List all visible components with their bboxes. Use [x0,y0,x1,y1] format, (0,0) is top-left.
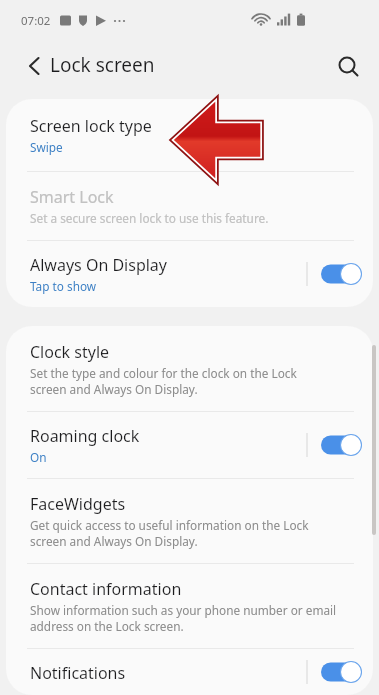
button[interactable]: Smart Lock [6,172,373,240]
button[interactable]: Screen lock type [6,99,373,171]
button[interactable]: Clock style [6,326,373,411]
staticText: Set a secure screen lock to use this fea… [30,210,269,226]
staticText: Set the type and colour for the clock on… [30,365,297,397]
staticText: Screen lock type [30,115,152,137]
staticText: Roaming clock [30,425,140,447]
button[interactable]: Toggle [305,254,367,294]
button[interactable]: Toggle [305,652,367,692]
staticText: Swipe [30,139,63,155]
staticText: Notifications [30,662,126,682]
staticText: Contact information [30,578,182,600]
staticText: Smart Lock [30,186,114,208]
staticText: 07:02 [21,13,51,29]
staticText: Get quick access to useful information o… [30,517,309,549]
button[interactable]: Notifications [6,649,373,695]
button[interactable]: Back [12,44,56,88]
button[interactable]: Toggle [305,425,367,465]
button[interactable]: Roaming clock [6,412,373,478]
button[interactable]: Search [326,44,370,88]
staticText: Tap to show [30,278,97,294]
staticText: Clock style [30,341,110,363]
staticText: On [30,449,47,465]
button[interactable]: Always On Display [6,241,373,307]
button[interactable]: FaceWidgets [6,479,373,563]
staticText: FaceWidgets [30,493,126,515]
staticText: Show information such as your phone numb… [30,602,337,634]
button[interactable]: Contact information [6,564,373,648]
staticText: Lock screen [50,52,155,78]
staticText: Always On Display [30,254,168,276]
